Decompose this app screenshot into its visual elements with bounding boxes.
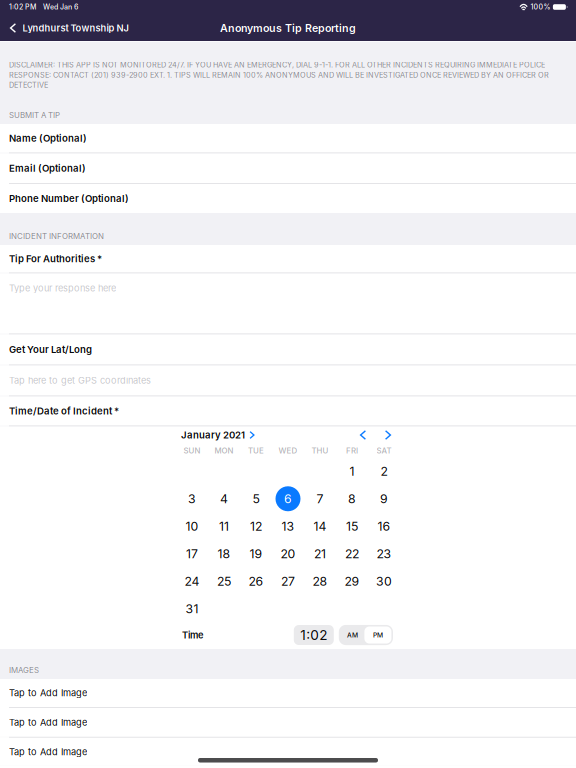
button[interactable]: Lyndhurst Township NJ: [0, 17, 128, 39]
button[interactable]: 17: [176, 540, 208, 567]
staticText: 26: [248, 574, 263, 589]
button[interactable]: 8: [336, 485, 368, 512]
button[interactable]: Tap to Add Image: [0, 708, 576, 737]
button[interactable]: 11: [208, 512, 240, 540]
button[interactable]: Get Your Lat/Long: [0, 334, 576, 364]
button[interactable]: 23: [368, 540, 400, 567]
staticText: 15: [346, 519, 358, 534]
staticText: 20: [280, 546, 295, 561]
button[interactable]: 10: [176, 512, 208, 540]
button[interactable]: 1:02: [294, 625, 334, 645]
button[interactable]: PM: [364, 626, 391, 643]
button[interactable]: 27: [272, 567, 304, 595]
staticText: 14: [313, 519, 326, 534]
staticText: 22: [345, 546, 359, 561]
button[interactable]: 4: [208, 485, 240, 512]
staticText: 17: [186, 546, 198, 561]
staticText: 13: [281, 519, 294, 534]
staticText: 29: [344, 574, 359, 589]
staticText: Email (Optional): [9, 162, 86, 174]
staticText: Tip For Authorities *: [9, 253, 102, 265]
button[interactable]: 1: [336, 457, 368, 485]
button[interactable]: 12: [240, 512, 272, 540]
button[interactable]: Type your response here: [0, 273, 576, 333]
button[interactable]: Previous month: [358, 430, 368, 440]
staticText: 10: [185, 519, 198, 534]
staticText: Time/Date of Incident *: [9, 405, 119, 417]
button[interactable]: 9: [368, 485, 400, 512]
staticText: 28: [312, 574, 327, 589]
button[interactable]: 15: [336, 512, 368, 540]
button[interactable]: 5: [240, 485, 272, 512]
button[interactable]: Tap to Add Image: [0, 738, 576, 766]
staticText: 2: [380, 464, 387, 479]
button[interactable]: 29: [336, 567, 368, 595]
staticText: 8: [348, 491, 356, 506]
button[interactable]: 14: [304, 512, 336, 540]
staticText: 30: [376, 574, 392, 589]
staticText: SAT: [376, 446, 391, 455]
button[interactable]: 24: [176, 567, 208, 595]
staticText: 19: [249, 546, 262, 561]
button[interactable]: 28: [304, 567, 336, 595]
button[interactable]: Tap to Add Image: [0, 679, 576, 707]
staticText: INCIDENT INFORMATION: [9, 231, 104, 241]
button[interactable]: 3: [176, 485, 208, 512]
button[interactable]: 13: [272, 512, 304, 540]
button[interactable]: 19: [240, 540, 272, 567]
staticText: 100%: [530, 3, 550, 11]
button[interactable]: January 2021: [181, 429, 256, 441]
button[interactable]: Name (Optional): [0, 124, 576, 152]
staticText: 9: [380, 491, 388, 506]
button[interactable]: Email (Optional): [0, 153, 576, 183]
staticText: 6: [284, 491, 292, 506]
staticText: Tap here to get GPS coordinates: [9, 375, 151, 386]
button[interactable]: 7: [304, 485, 336, 512]
staticText: Anonymous Tip Reporting: [220, 21, 356, 34]
button[interactable]: Tap here to get GPS coordinates: [0, 365, 576, 395]
staticText: 1:02 PM: [9, 3, 36, 11]
staticText: Get Your Lat/Long: [9, 344, 92, 355]
staticText: 3: [188, 491, 196, 506]
staticText: Name (Optional): [9, 132, 87, 144]
staticText: 27: [281, 574, 295, 589]
button[interactable]: 31: [176, 595, 208, 622]
button[interactable]: 20: [272, 540, 304, 567]
staticText: 4: [220, 491, 228, 506]
staticText: Phone Number (Optional): [9, 193, 129, 204]
button[interactable]: Tip For Authorities *: [0, 245, 576, 272]
button[interactable]: 18: [208, 540, 240, 567]
staticText: PM: [373, 631, 383, 639]
button[interactable]: 21: [304, 540, 336, 567]
staticText: 7: [316, 491, 323, 506]
button[interactable]: 6: [272, 485, 304, 512]
button[interactable]: 16: [368, 512, 400, 540]
button[interactable]: 25: [208, 567, 240, 595]
staticText: DISCLAIMER: THIS APP IS NOT MONITORED 24…: [9, 60, 549, 89]
staticText: Lyndhurst Township NJ: [22, 22, 128, 34]
staticText: AM: [347, 631, 358, 639]
staticText: IMAGES: [9, 665, 39, 675]
button[interactable]: AM: [340, 627, 364, 643]
button[interactable]: Time/Date of Incident *: [0, 396, 576, 425]
staticText: Wed Jan 6: [43, 3, 78, 11]
staticText: 12: [250, 519, 262, 534]
staticText: 18: [217, 546, 230, 561]
button[interactable]: Next month: [383, 430, 393, 440]
staticText: 16: [377, 519, 390, 534]
staticText: 31: [185, 601, 198, 616]
staticText: MON: [214, 446, 233, 455]
staticText: 11: [219, 519, 229, 534]
button[interactable]: Phone Number (Optional): [0, 184, 576, 213]
button[interactable]: 30: [368, 567, 400, 595]
button[interactable]: 22: [336, 540, 368, 567]
staticText: SUN: [183, 446, 200, 455]
staticText: Type your response here: [9, 282, 116, 294]
staticText: 23: [376, 546, 391, 561]
staticText: 24: [184, 574, 199, 589]
staticText: THU: [311, 446, 328, 455]
button[interactable]: 26: [240, 567, 272, 595]
staticText: SUBMIT A TIP: [9, 110, 60, 120]
button[interactable]: 2: [368, 457, 400, 485]
staticText: 5: [252, 491, 259, 506]
